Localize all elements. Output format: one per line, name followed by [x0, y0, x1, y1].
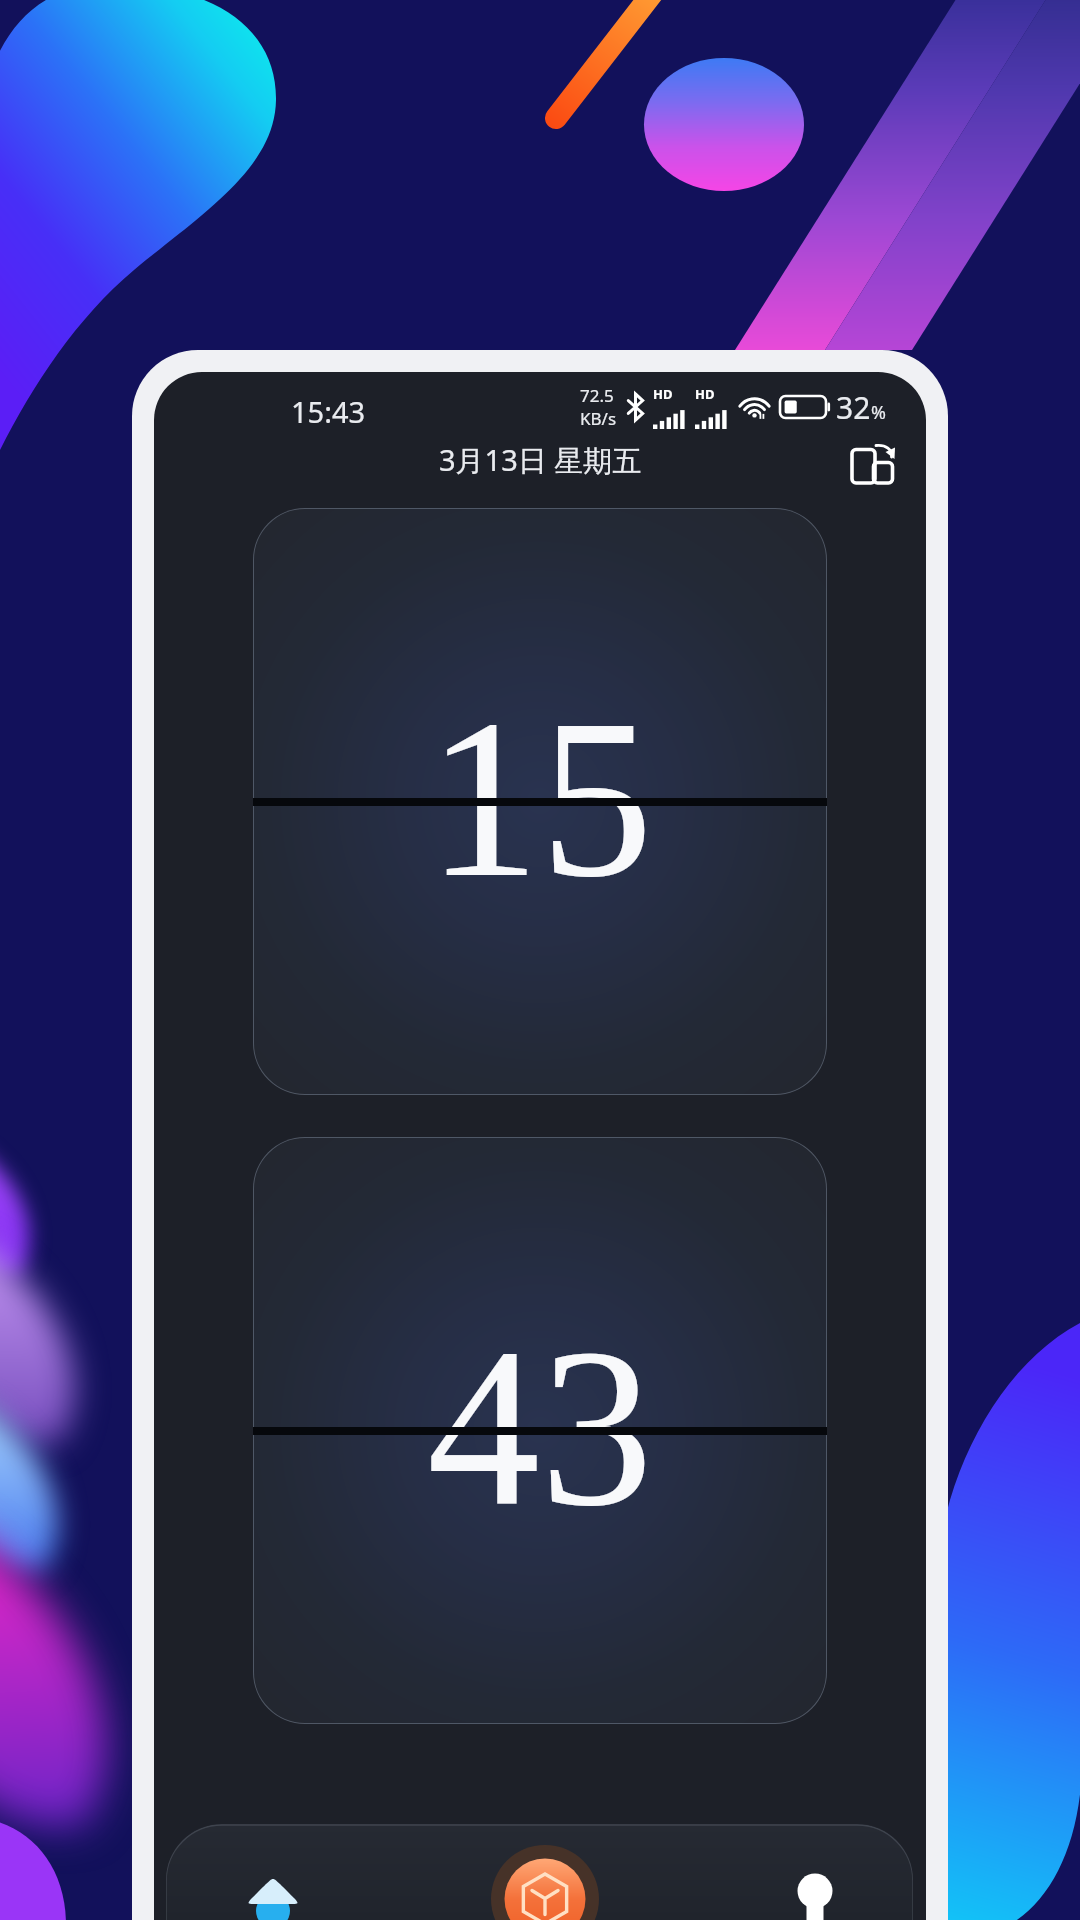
staticText: 32: [836, 387, 871, 428]
staticText: 15: [427, 674, 653, 924]
button[interactable]: 15: [253, 508, 827, 1095]
staticText: KB/s: [580, 407, 617, 430]
button[interactable]: Rotate screen: [842, 432, 906, 488]
staticText: HD: [653, 385, 673, 403]
staticText: 43: [427, 1303, 653, 1553]
staticText: HD: [695, 385, 715, 403]
button[interactable]: Recents: [760, 1824, 870, 1920]
staticText: %: [871, 400, 886, 425]
staticText: 15:43: [291, 392, 366, 431]
button[interactable]: Back: [218, 1824, 328, 1920]
staticText: 72.5: [580, 384, 614, 407]
staticText: 3月13日 星期五: [439, 440, 642, 480]
button[interactable]: 43: [253, 1137, 827, 1724]
button[interactable]: Home: [480, 1824, 610, 1920]
